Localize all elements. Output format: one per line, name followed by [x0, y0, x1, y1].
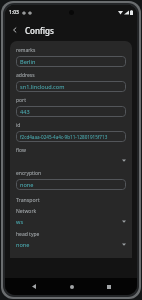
- staticText: encryption: [16, 170, 42, 177]
- button[interactable]: Recents: [100, 278, 117, 295]
- staticText: remarks: [16, 47, 36, 54]
- staticText: port: [16, 97, 26, 104]
- staticText: Configs: [25, 25, 54, 36]
- staticText: sn1.lincloud.com: [20, 83, 65, 91]
- button[interactable]: Back: [25, 278, 42, 295]
- staticText: head type: [16, 231, 40, 238]
- staticText: none: [20, 181, 34, 189]
- button[interactable]: head type: [16, 231, 126, 254]
- staticText: 1:03: [9, 9, 19, 16]
- staticText: id: [16, 122, 21, 129]
- button[interactable]: id: [16, 122, 126, 147]
- button[interactable]: Home: [63, 278, 80, 295]
- staticText: Berlin: [20, 58, 36, 66]
- button[interactable]: remarks: [16, 47, 126, 72]
- staticText: Transport: [16, 196, 40, 203]
- button[interactable]: address: [16, 72, 126, 97]
- staticText: address: [16, 72, 35, 79]
- button[interactable]: encryption: [16, 170, 126, 195]
- staticText: flow: [16, 147, 26, 154]
- button[interactable]: Network: [16, 208, 126, 231]
- button[interactable]: flow: [16, 147, 126, 170]
- staticText: ws: [16, 218, 24, 226]
- staticText: 443: [20, 108, 30, 116]
- staticText: none: [16, 241, 30, 249]
- staticText: f2cd4aaa-0245-4a4c-9b11-12801915f713: [20, 134, 108, 140]
- button[interactable]: Back: [5, 20, 25, 40]
- button[interactable]: port: [16, 97, 126, 122]
- staticText: Network: [16, 208, 37, 215]
